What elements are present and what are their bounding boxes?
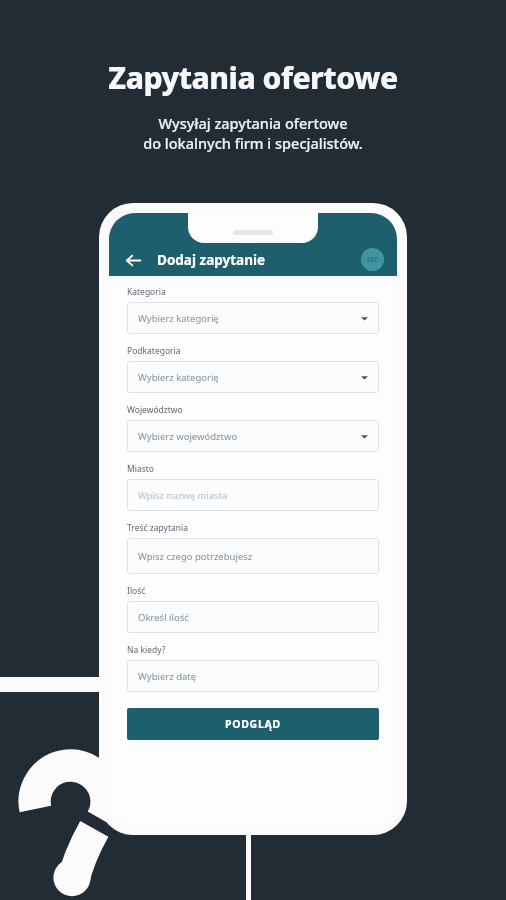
staticText: MC <box>367 255 379 265</box>
staticText: Wybierz województwo <box>138 430 238 443</box>
staticText: Wysyłaj zapytania ofertowe do lokalnych … <box>0 113 506 154</box>
staticText: Dodaj zapytanie <box>157 251 265 269</box>
button[interactable]: Wybierz kategorię <box>127 302 379 334</box>
button[interactable]: PODGLĄD <box>127 708 379 740</box>
staticText: Określ ilość <box>138 611 189 624</box>
button[interactable]: Profile <box>361 248 384 271</box>
button[interactable]: Wpisz czego potrzebujesz <box>127 538 379 574</box>
staticText: Kategoria <box>127 286 166 298</box>
staticText: Ilość <box>127 585 146 597</box>
staticText: Na kiedy? <box>127 644 166 656</box>
staticText: Miasto <box>127 463 154 475</box>
staticText: Wybierz datę <box>138 670 197 683</box>
button[interactable]: Wybierz datę <box>127 660 379 692</box>
staticText: Treść zapytania <box>127 522 189 534</box>
staticText: Podkategoria <box>127 345 181 357</box>
button[interactable]: Wybierz kategorię <box>127 361 379 393</box>
staticText: Wpisz nazwę miasta <box>138 489 228 502</box>
staticText: PODGLĄD <box>225 717 281 731</box>
staticText: Wpisz czego potrzebujesz <box>138 550 253 563</box>
staticText: Wybierz kategorię <box>138 371 219 384</box>
staticText: Wybierz kategorię <box>138 312 219 325</box>
button[interactable]: Określ ilość <box>127 601 379 633</box>
button[interactable]: Wpisz nazwę miasta <box>127 479 379 511</box>
staticText: Województwo <box>127 404 183 416</box>
button[interactable]: Wybierz województwo <box>127 420 379 452</box>
staticText: Zapytania ofertowe <box>0 57 506 98</box>
button[interactable]: Back <box>118 245 148 275</box>
